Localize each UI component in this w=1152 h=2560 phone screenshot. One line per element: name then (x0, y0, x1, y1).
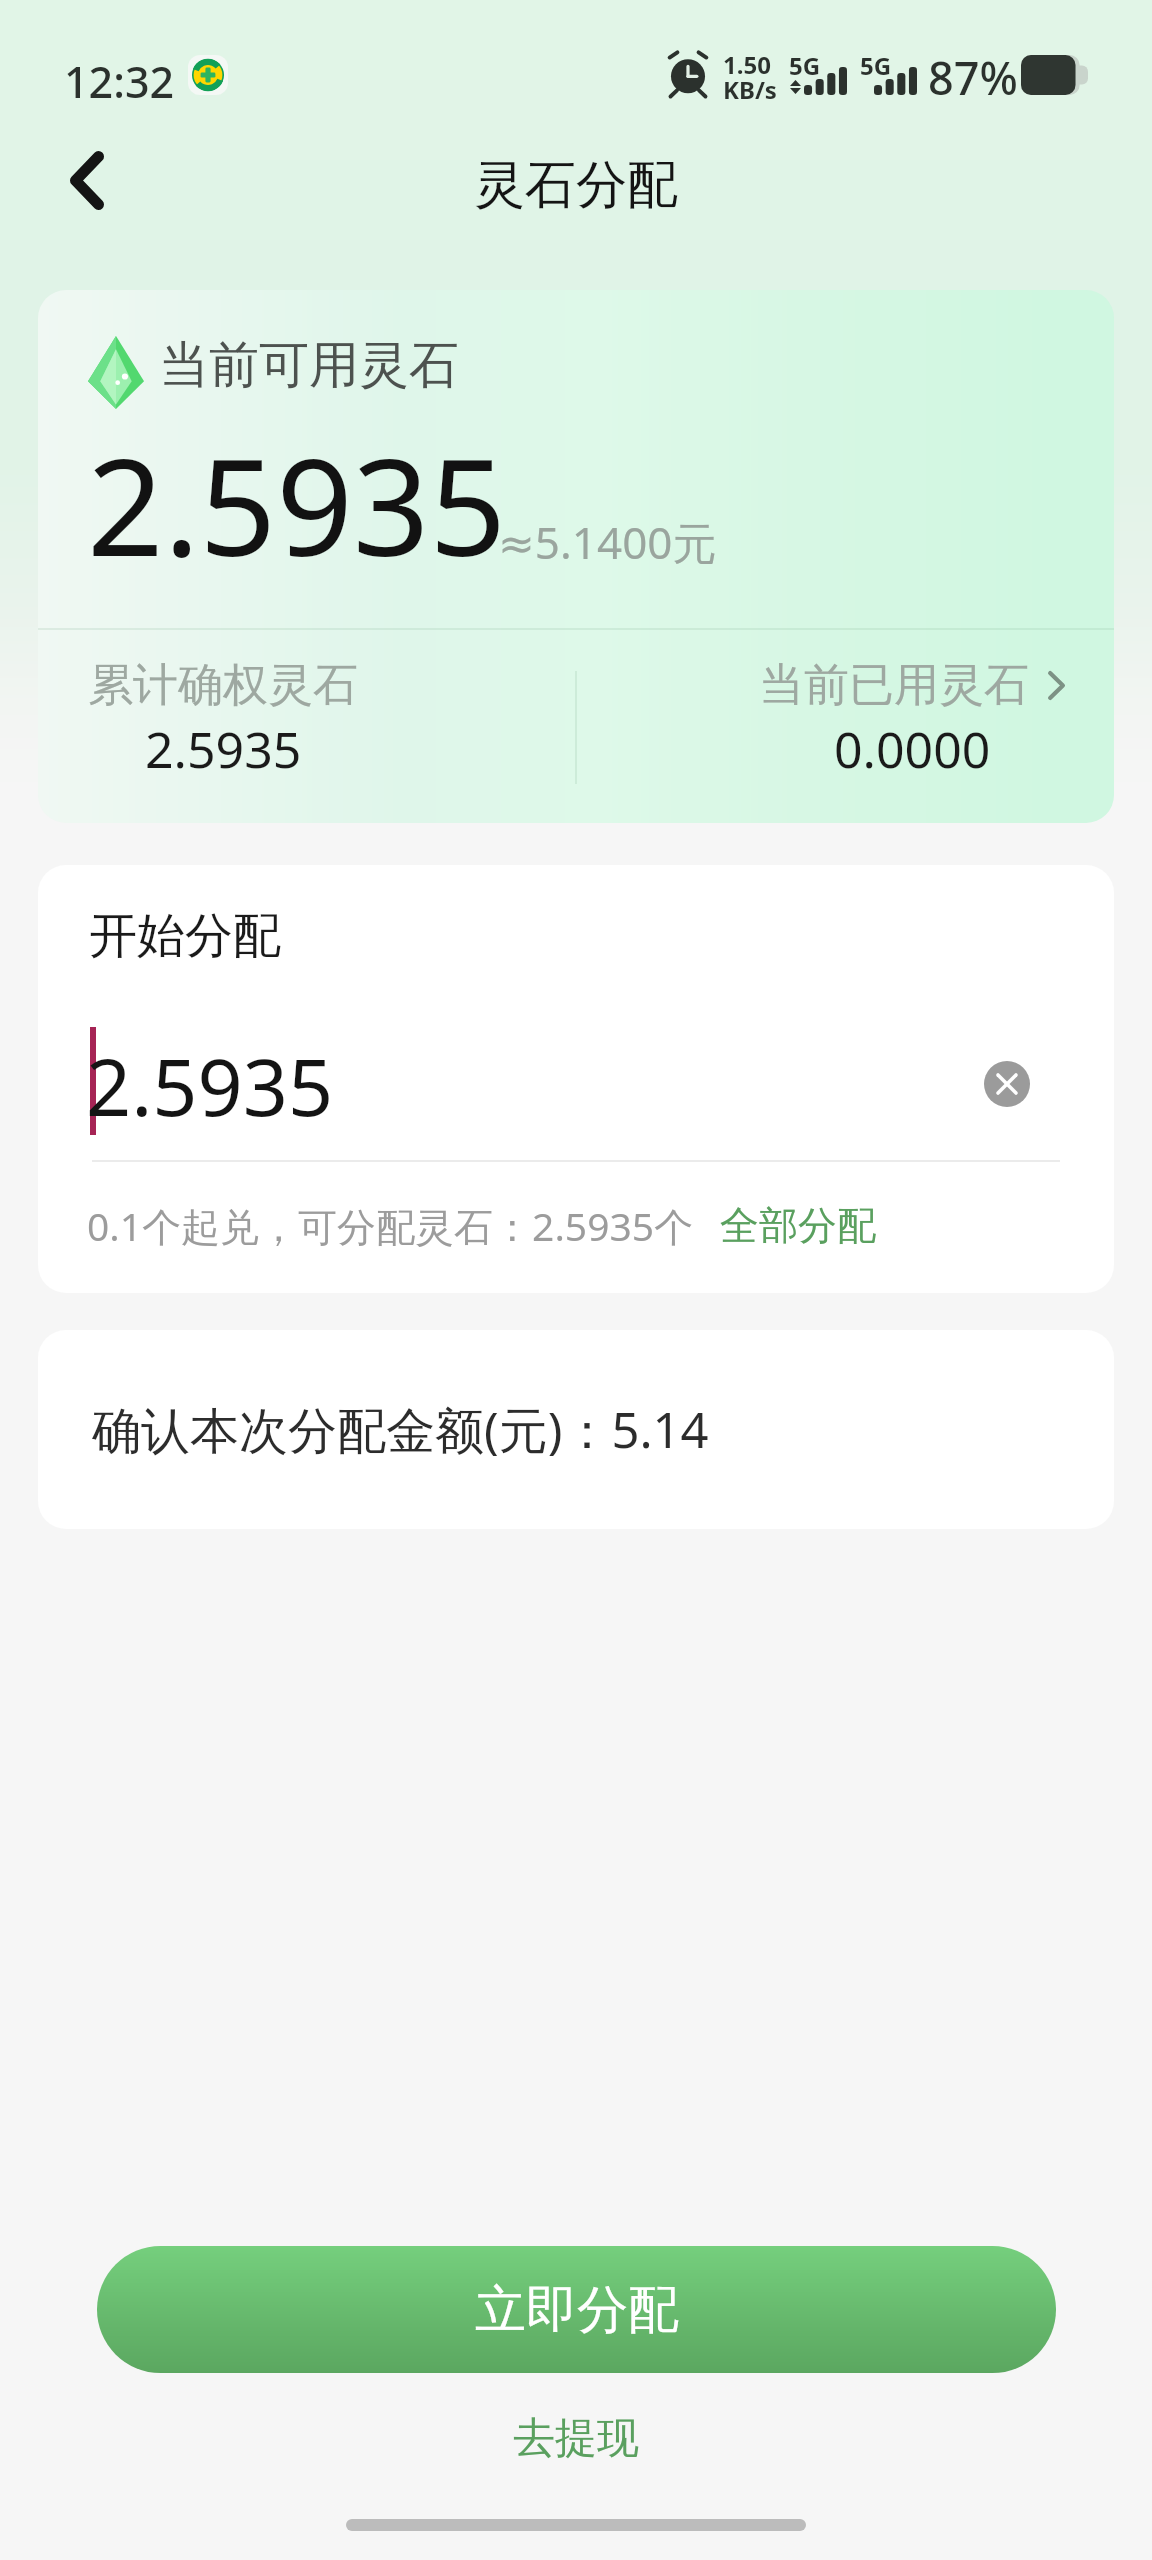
staticText: KB/s (723, 73, 777, 106)
staticText: 2.5935 (86, 1032, 334, 1140)
button[interactable]: Clear (984, 1061, 1030, 1107)
staticText: 2.5935 (145, 715, 302, 783)
staticText: 当前已用灵石 (759, 657, 1029, 714)
staticText: 2.5935 (87, 413, 507, 596)
staticText: 全部分配 (720, 1201, 876, 1250)
staticText: 0.0000 (834, 715, 991, 783)
staticText: 灵石分配 (474, 153, 678, 217)
staticText: 当前可用灵石 (159, 334, 459, 397)
staticText: 87% (928, 47, 1018, 108)
button[interactable]: 当前已用灵石 (759, 657, 1065, 783)
staticText: ≈5.1400元 (498, 512, 717, 572)
button[interactable]: 去提现 (485, 2402, 667, 2475)
staticText: 5G (860, 49, 892, 82)
staticText: 确认本次分配金额(元)：5.14 (92, 1396, 709, 1463)
staticText: 开始分配 (89, 906, 281, 966)
staticText: 1.50 (723, 48, 771, 81)
button[interactable]: 全部分配 (720, 1201, 876, 1250)
staticText: 5G (789, 49, 821, 82)
staticText: 累计确权灵石 (88, 657, 358, 714)
staticText: 12:32 (64, 52, 175, 111)
button[interactable]: Back (28, 121, 146, 239)
staticText: 立即分配 (475, 2278, 679, 2342)
staticText: 去提现 (513, 2412, 639, 2465)
button[interactable]: 立即分配 (97, 2246, 1056, 2373)
staticText: 0.1个起兑，可分配灵石：2.5935个 (87, 1199, 694, 1252)
